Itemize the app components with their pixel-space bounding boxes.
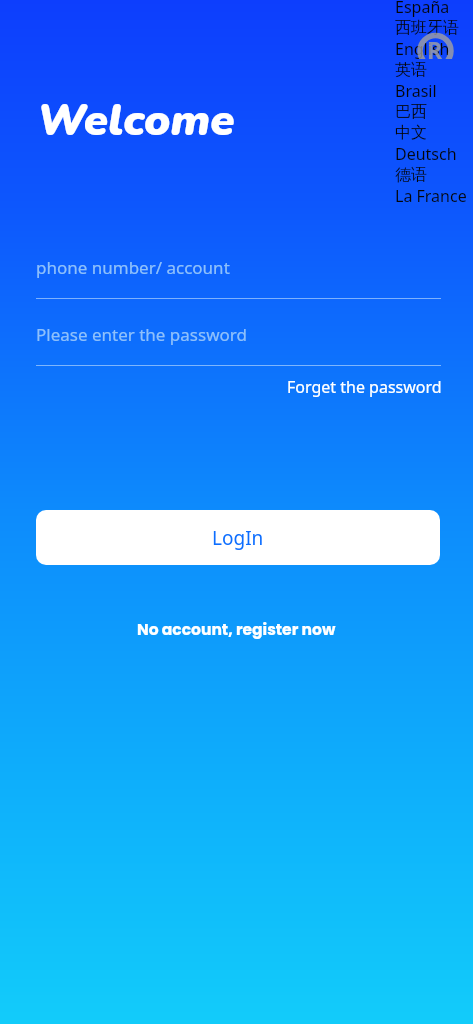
staticText: 巴西 <box>395 102 427 122</box>
button[interactable]: 巴西 <box>395 101 472 122</box>
button[interactable]: LogIn <box>36 510 440 565</box>
staticText: phone number/ account <box>36 256 230 279</box>
button[interactable]: 德语 <box>395 164 472 185</box>
button[interactable]: Forget the password <box>279 370 450 404</box>
other: Registered trademark logo <box>414 30 456 59</box>
staticText: Welcome <box>37 91 235 151</box>
button[interactable]: English <box>395 38 472 59</box>
button[interactable]: Deutsch <box>395 143 472 164</box>
button[interactable]: Please enter the password <box>36 312 441 365</box>
staticText: English <box>395 38 450 59</box>
staticText: Forget the password <box>287 376 442 398</box>
button[interactable]: Brasil <box>395 80 472 101</box>
staticText: LogIn <box>212 525 264 551</box>
staticText: Please enter the password <box>36 323 247 346</box>
staticText: 德语 <box>395 165 427 185</box>
button[interactable]: No account, register now <box>129 613 344 647</box>
staticText: La France <box>395 185 467 206</box>
staticText: España <box>395 0 450 17</box>
button[interactable]: La France <box>395 185 472 206</box>
staticText: 英语 <box>395 60 427 80</box>
staticText: No account, register now <box>137 619 336 641</box>
staticText: Brasil <box>395 80 437 101</box>
staticText: 西班牙语 <box>395 18 459 38</box>
staticText: 中文 <box>395 123 427 143</box>
button[interactable]: 西班牙语 <box>395 17 472 38</box>
button[interactable]: España <box>395 0 472 17</box>
staticText: R <box>427 34 443 59</box>
button[interactable]: 中文 <box>395 122 472 143</box>
button[interactable]: 英语 <box>395 59 472 80</box>
staticText: Deutsch <box>395 143 457 164</box>
button[interactable]: phone number/ account <box>36 245 441 298</box>
